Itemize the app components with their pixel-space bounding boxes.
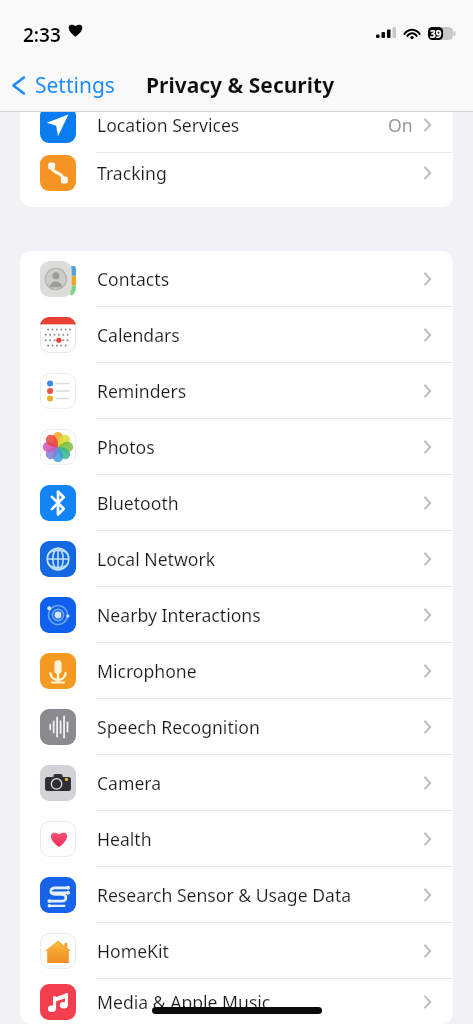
staticText: Photos	[97, 435, 423, 459]
staticText: 2:33	[23, 22, 61, 48]
staticText: 39	[430, 27, 442, 40]
staticText: Contacts	[97, 267, 423, 291]
other: Home indicator	[152, 1007, 322, 1014]
button[interactable]: Media & Apple Music	[20, 979, 453, 1024]
staticText: Calendars	[97, 323, 423, 347]
button[interactable]: Camera	[20, 755, 453, 811]
button[interactable]: Location Services	[20, 112, 453, 153]
staticText: Reminders	[97, 379, 423, 403]
button[interactable]: Photos	[20, 419, 453, 475]
button[interactable]: Bluetooth	[20, 475, 453, 531]
button[interactable]: Microphone	[20, 643, 453, 699]
button[interactable]: Tracking	[20, 153, 453, 192]
button[interactable]: Local Network	[20, 531, 453, 587]
staticText: HomeKit	[97, 939, 423, 963]
button[interactable]: Reminders	[20, 363, 453, 419]
staticText: On	[388, 113, 413, 137]
staticText: Health	[97, 827, 423, 851]
staticText: Location Services	[97, 113, 388, 137]
button[interactable]: Calendars	[20, 307, 453, 363]
staticText: Privacy & Security	[146, 71, 335, 100]
button[interactable]: Speech Recognition	[20, 699, 453, 755]
staticText: Speech Recognition	[97, 715, 423, 739]
staticText: Nearby Interactions	[97, 603, 423, 627]
staticText: Microphone	[97, 659, 423, 683]
staticText: Settings	[35, 71, 115, 100]
button[interactable]: HomeKit	[20, 923, 453, 979]
staticText: Tracking	[97, 161, 423, 185]
staticText: Bluetooth	[97, 491, 423, 515]
staticText: Camera	[97, 771, 423, 795]
button[interactable]: Nearby Interactions	[20, 587, 453, 643]
staticText: Research Sensor & Usage Data	[97, 883, 423, 907]
staticText: Media & Apple Music	[97, 990, 423, 1014]
button[interactable]: Research Sensor & Usage Data	[20, 867, 453, 923]
button[interactable]: Health	[20, 811, 453, 867]
button[interactable]: Settings	[7, 63, 119, 108]
button[interactable]: Contacts	[20, 251, 453, 307]
staticText: Local Network	[97, 547, 423, 571]
